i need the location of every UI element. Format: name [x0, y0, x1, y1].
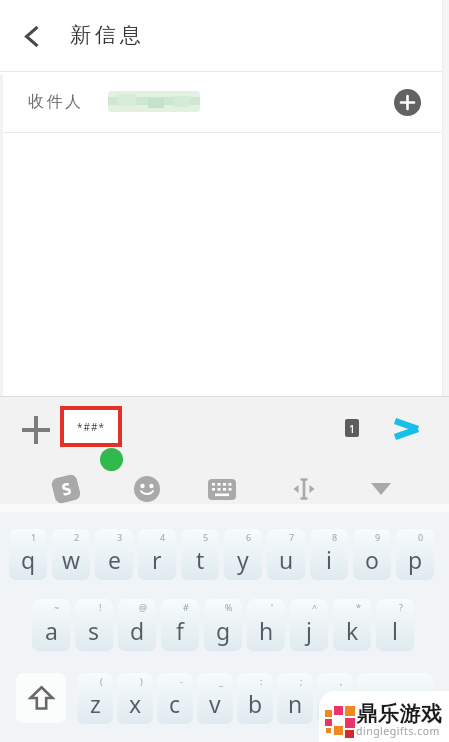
- staticText: a: [45, 615, 58, 646]
- staticText: 7: [289, 531, 295, 543]
- staticText: w: [62, 544, 81, 575]
- button[interactable]: [390, 412, 424, 446]
- button[interactable]: 8: [310, 529, 348, 580]
- button[interactable]: *: [333, 599, 371, 651]
- button[interactable]: 2: [52, 529, 90, 580]
- staticText: i: [326, 544, 332, 575]
- button[interactable]: [208, 479, 236, 500]
- staticText: c: [169, 688, 181, 719]
- staticText: ~: [54, 601, 60, 613]
- staticText: -: [180, 675, 183, 687]
- button[interactable]: ': [247, 599, 285, 651]
- button[interactable]: _: [197, 673, 233, 724]
- staticText: *: [356, 601, 361, 613]
- staticText: j: [306, 615, 312, 646]
- button[interactable]: :: [237, 673, 273, 724]
- staticText: 6: [246, 531, 252, 543]
- button[interactable]: #: [161, 599, 199, 651]
- button[interactable]: 7: [267, 529, 305, 580]
- button[interactable]: [20, 414, 52, 446]
- staticText: 5: [203, 531, 209, 543]
- staticText: dinglegifts.com: [356, 724, 440, 738]
- button[interactable]: [357, 673, 433, 724]
- button[interactable]: *##*: [60, 406, 122, 447]
- staticText: z: [90, 688, 101, 719]
- staticText: _: [219, 675, 223, 687]
- staticText: ': [271, 601, 274, 613]
- button[interactable]: 1: [9, 529, 47, 580]
- button[interactable]: [134, 476, 160, 502]
- staticText: ,: [340, 675, 343, 687]
- button[interactable]: 收件人: [0, 72, 449, 132]
- staticText: @: [139, 601, 148, 613]
- button[interactable]: [370, 481, 392, 497]
- button[interactable]: 0: [396, 529, 434, 580]
- button[interactable]: @: [118, 599, 156, 651]
- button[interactable]: 9: [353, 529, 391, 580]
- staticText: 8: [332, 531, 338, 543]
- staticText: 9: [375, 531, 381, 543]
- staticText: 鼎乐游戏: [356, 701, 442, 727]
- staticText: b: [248, 688, 263, 719]
- staticText: g: [216, 615, 231, 646]
- button[interactable]: ;: [277, 673, 313, 724]
- button[interactable]: %: [204, 599, 242, 651]
- button[interactable]: [394, 89, 421, 116]
- staticText: d: [130, 615, 145, 646]
- staticText: ): [140, 675, 143, 687]
- button[interactable]: (: [77, 673, 113, 724]
- button[interactable]: 3: [95, 529, 133, 580]
- staticText: 4: [160, 531, 166, 543]
- staticText: #: [183, 601, 189, 613]
- staticText: m: [324, 688, 346, 719]
- staticText: s: [88, 615, 100, 646]
- button[interactable]: 5: [181, 529, 219, 580]
- staticText: k: [346, 615, 359, 646]
- staticText: p: [408, 544, 423, 575]
- staticText: x: [129, 688, 142, 719]
- staticText: 2: [74, 531, 80, 543]
- button[interactable]: !: [75, 599, 113, 651]
- staticText: 收件人: [28, 92, 84, 112]
- button[interactable]: [292, 478, 316, 500]
- button[interactable]: ~: [32, 599, 70, 651]
- staticText: S: [59, 477, 74, 501]
- staticText: *##*: [77, 420, 105, 434]
- staticText: !: [99, 601, 102, 613]
- button[interactable]: -: [157, 673, 193, 724]
- staticText: ^: [312, 601, 318, 613]
- staticText: q: [21, 544, 36, 575]
- button[interactable]: ,: [317, 673, 353, 724]
- staticText: 1: [349, 421, 356, 436]
- staticText: y: [237, 544, 249, 575]
- staticText: f: [176, 615, 184, 646]
- staticText: 0: [418, 531, 424, 543]
- button[interactable]: S: [50, 473, 82, 505]
- button[interactable]: ): [117, 673, 153, 724]
- staticText: l: [392, 615, 398, 646]
- staticText: ;: [300, 675, 303, 687]
- staticText: o: [365, 544, 379, 575]
- staticText: e: [108, 544, 121, 575]
- staticText: n: [288, 688, 303, 719]
- button[interactable]: [14, 18, 50, 54]
- staticText: 1: [31, 531, 37, 543]
- staticText: :: [260, 675, 263, 687]
- button[interactable]: ^: [290, 599, 328, 651]
- staticText: r: [152, 544, 162, 575]
- staticText: ?: [399, 601, 403, 613]
- staticText: 新信息: [68, 22, 143, 48]
- staticText: (: [100, 675, 103, 687]
- staticText: h: [259, 615, 274, 646]
- staticText: v: [209, 688, 221, 719]
- staticText: 3: [117, 531, 123, 543]
- staticText: %: [225, 601, 233, 613]
- button[interactable]: ?: [376, 599, 414, 651]
- button[interactable]: 6: [224, 529, 262, 580]
- button[interactable]: 4: [138, 529, 176, 580]
- button[interactable]: [16, 673, 66, 723]
- staticText: t: [196, 544, 205, 575]
- staticText: u: [279, 544, 294, 575]
